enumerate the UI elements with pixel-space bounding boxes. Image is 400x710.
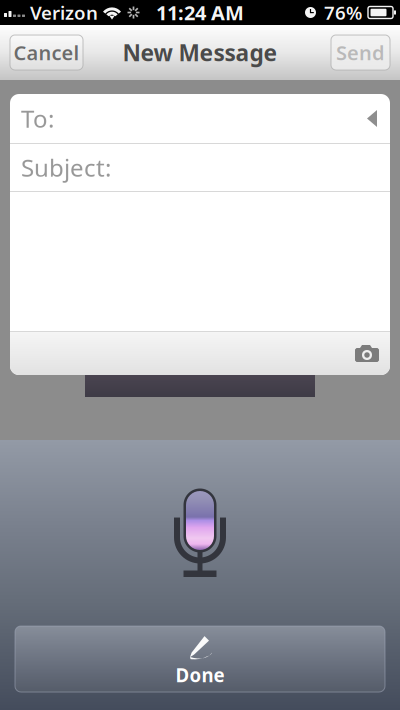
button[interactable]: Expand recipients (359, 101, 385, 136)
staticText: New Message (122, 37, 277, 67)
button[interactable]: Done (15, 626, 385, 692)
staticText: Done (175, 663, 224, 687)
staticText: 11:24 AM (156, 0, 244, 26)
staticText: To: (21, 103, 54, 134)
staticText: Verizon (30, 0, 98, 25)
staticText: Cancel (13, 39, 79, 66)
button[interactable]: Insert photo (344, 332, 390, 375)
staticText: 76% (324, 0, 362, 25)
button[interactable]: Send (331, 35, 390, 70)
staticText: Subject: (21, 152, 111, 183)
staticText: Send (336, 39, 385, 66)
button[interactable]: Cancel (10, 35, 83, 70)
